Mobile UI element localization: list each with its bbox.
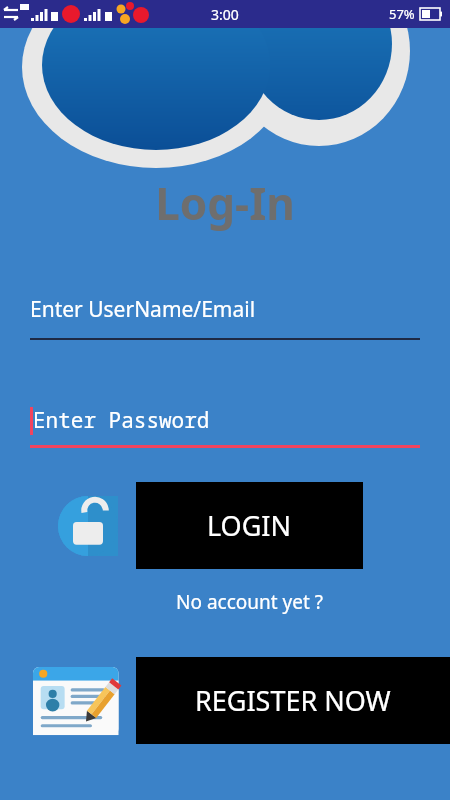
button[interactable]: Enter Password: [30, 406, 420, 448]
staticText: Enter UserName/Email: [30, 295, 256, 324]
button[interactable]: REGISTER NOW: [136, 657, 450, 744]
button[interactable]: Register: [33, 664, 123, 738]
staticText: 57%: [389, 5, 415, 23]
staticText: REGISTER NOW: [195, 682, 391, 719]
staticText: LOGIN: [207, 507, 292, 544]
staticText: Enter Password: [33, 406, 210, 435]
button[interactable]: No account yet ?: [136, 589, 363, 615]
button[interactable]: LOGIN: [136, 482, 363, 569]
button[interactable]: Enter UserName/Email: [30, 295, 420, 340]
staticText: No account yet ?: [176, 589, 324, 615]
staticText: 3:00: [211, 5, 239, 24]
button[interactable]: Unlock: [58, 496, 118, 556]
staticText: Log-In: [0, 173, 450, 233]
